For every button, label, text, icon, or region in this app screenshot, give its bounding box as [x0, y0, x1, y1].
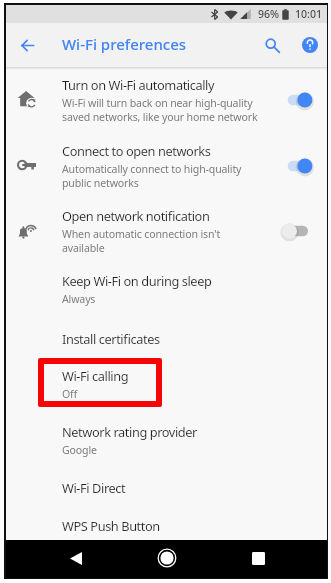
button[interactable]: Keep Wi-Fi on during sleep	[6, 272, 327, 329]
staticText: Install certificates	[62, 330, 160, 347]
staticText: 96%	[258, 7, 280, 21]
other: Home	[17, 89, 37, 109]
staticText: Wi-Fi will turn back on near high-qualit…	[62, 96, 258, 124]
button[interactable]: Switch on	[282, 89, 316, 111]
staticText: Open network notification	[62, 207, 210, 224]
staticText: Automatically connect to high-quality pu…	[62, 162, 242, 190]
button[interactable]: Back	[60, 542, 92, 574]
button[interactable]: Home	[6, 76, 327, 142]
staticText: Off	[62, 387, 78, 401]
staticText: Turn on Wi-Fi automatically	[62, 76, 215, 93]
button[interactable]: Switch off	[282, 220, 316, 242]
button[interactable]: Network rating provider	[6, 423, 327, 479]
staticText: When automatic connection isn't availabl…	[62, 227, 221, 255]
button[interactable]: Search	[256, 29, 288, 61]
staticText: Wi-Fi preferences	[62, 34, 187, 54]
staticText: Keep Wi-Fi on during sleep	[62, 272, 212, 289]
staticText: Google	[62, 443, 97, 457]
button[interactable]: Security key	[6, 142, 327, 207]
button[interactable]: Help	[294, 29, 326, 61]
button[interactable]: Install certificates	[6, 330, 327, 368]
staticText: Network rating provider	[62, 423, 197, 440]
button[interactable]: Wi-Fi calling	[6, 367, 327, 423]
button[interactable]: Wi-Fi Direct	[6, 479, 327, 517]
button[interactable]: Recent apps	[242, 542, 274, 574]
button[interactable]: Home	[151, 542, 183, 574]
other: Notification	[17, 220, 37, 240]
button[interactable]: Navigate up	[11, 29, 43, 61]
button[interactable]: WPS Push Button	[6, 517, 327, 557]
staticText: Connect to open networks	[62, 142, 211, 159]
staticText: 10:01	[295, 7, 323, 21]
staticText: Always	[62, 292, 96, 306]
staticText: Wi-Fi calling	[62, 367, 129, 384]
staticText: WPS Push Button	[62, 517, 160, 534]
button[interactable]: Notification	[6, 207, 327, 272]
other: Security key	[17, 155, 37, 175]
staticText: Wi-Fi Direct	[62, 479, 126, 496]
button[interactable]: Switch on	[282, 155, 316, 177]
